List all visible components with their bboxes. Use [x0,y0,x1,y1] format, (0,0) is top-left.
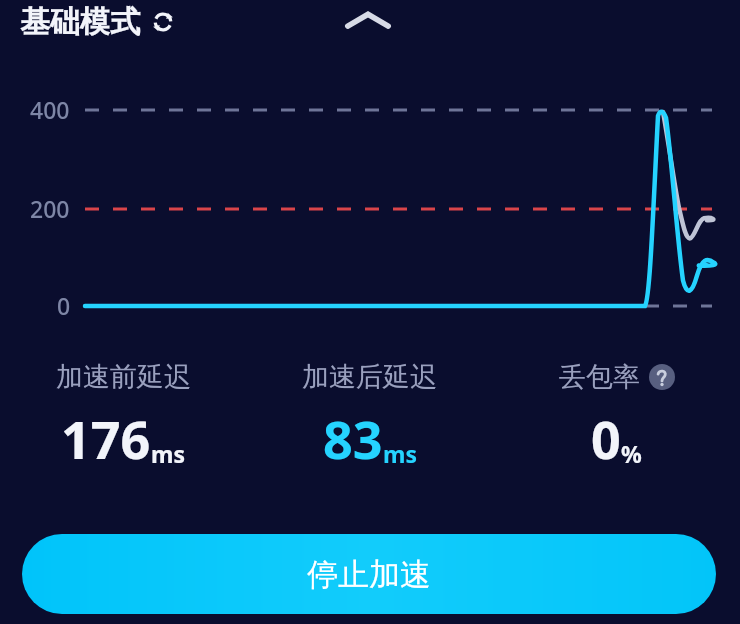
button[interactable]: 停止加速 [22,534,716,614]
staticText: 停止加速 [307,555,431,594]
staticText: 0 [57,290,71,321]
other: Switch mode [150,9,176,35]
button[interactable]: 加速后延迟 [246,360,493,474]
staticText: ms [383,438,417,469]
staticText: 400 [30,94,70,125]
other: Help [649,364,675,390]
button[interactable]: 基础模式 [20,3,176,41]
staticText: 200 [30,193,70,224]
staticText: 176 [61,403,151,474]
staticText: % [621,438,642,469]
button[interactable]: Collapse [338,0,398,40]
button[interactable]: 加速前延迟 [0,360,246,474]
staticText: 丢包率 [559,360,640,394]
staticText: 0 [591,403,621,474]
staticText: 加速前延迟 [56,360,191,394]
staticText: 加速后延迟 [302,360,437,394]
staticText: 基础模式 [20,3,140,41]
staticText: 83 [323,403,383,474]
button[interactable]: 丢包率 [493,360,740,474]
staticText: ms [151,438,185,469]
